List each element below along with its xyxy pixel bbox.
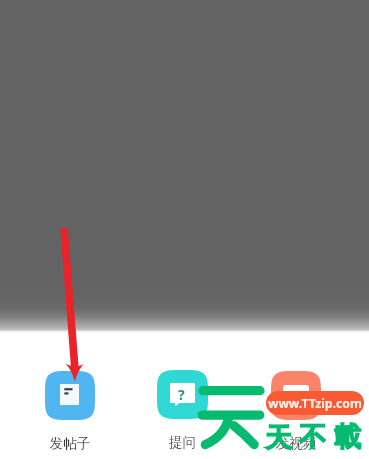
staticText: www.TTzip.com	[268, 395, 362, 412]
staticText: ?	[178, 385, 185, 404]
staticText: 发帖子	[36, 435, 104, 452]
staticText: 不	[299, 420, 326, 454]
button[interactable]: 发帖子	[36, 371, 104, 452]
staticText: 提问	[148, 434, 217, 451]
staticText: 載	[334, 420, 361, 454]
button[interactable]: 发视频	[262, 371, 330, 452]
staticText: 发视频	[262, 435, 330, 452]
button[interactable]: ?	[148, 370, 217, 451]
staticText: 天	[265, 421, 292, 455]
